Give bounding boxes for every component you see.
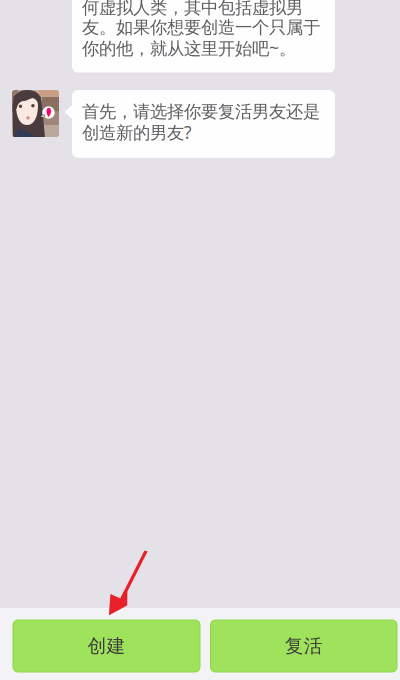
staticText: 你的他，就从这里开始吧~。 xyxy=(82,37,296,60)
staticText: 创建 xyxy=(87,634,125,657)
button[interactable]: 创建 xyxy=(13,620,200,672)
staticText: 复活 xyxy=(285,634,323,657)
button[interactable]: 复活 xyxy=(210,620,397,672)
staticText: 创造新的男友? xyxy=(82,121,192,144)
staticText: 友。如果你想要创造一个只属于 xyxy=(82,17,320,38)
staticText: 何虚拟人类，其中包括虚拟男 xyxy=(82,0,303,18)
staticText: 首先，请选择你要复活男友还是 xyxy=(82,101,320,122)
button[interactable]: Contact avatar xyxy=(12,90,59,137)
